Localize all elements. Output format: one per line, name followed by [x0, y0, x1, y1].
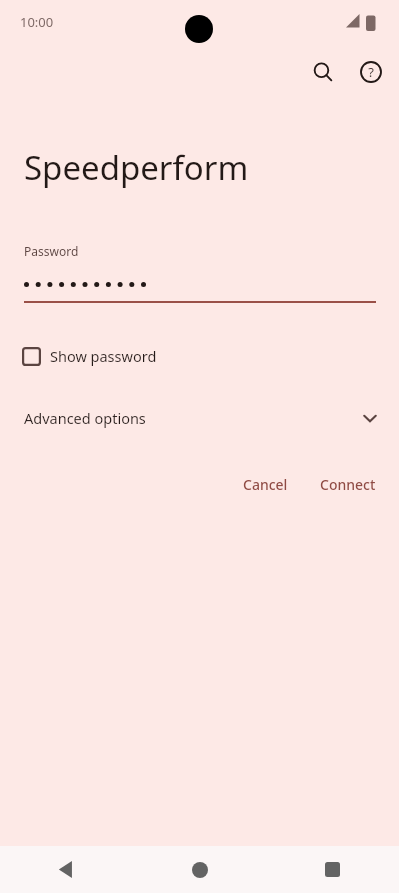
staticText: Cancel: [243, 475, 288, 494]
button[interactable]: Home: [133, 846, 266, 893]
staticText: 10:00: [20, 13, 54, 31]
button[interactable]: Help: [351, 52, 391, 92]
staticText: Password: [24, 243, 79, 259]
staticText: Advanced options: [24, 408, 146, 428]
button[interactable]: Advanced options: [0, 403, 399, 433]
button[interactable]: Connect: [309, 468, 387, 501]
staticText: Show password: [50, 346, 157, 366]
button[interactable]: Show password: [22, 346, 157, 366]
staticText: Connect: [320, 475, 376, 494]
button[interactable]: Back: [0, 846, 133, 893]
button[interactable]: Recent apps: [266, 846, 399, 893]
staticText: ?: [368, 63, 374, 81]
button[interactable]: Cancel: [232, 468, 299, 501]
button[interactable]: [0, 271, 399, 297]
button[interactable]: Search: [303, 52, 343, 92]
staticText: Speedperform: [24, 145, 249, 190]
